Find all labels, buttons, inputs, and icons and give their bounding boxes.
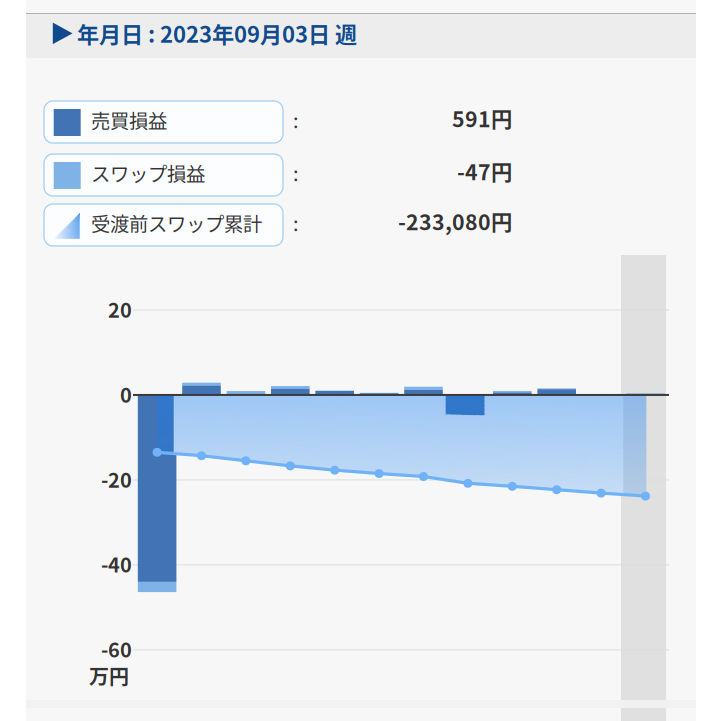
button[interactable]: スワップ損益 — [26, 154, 696, 196]
staticText: -233,080円 — [398, 205, 512, 236]
staticText: -20 — [101, 464, 132, 493]
staticText: -40 — [101, 549, 132, 578]
staticText: 0 — [120, 379, 132, 408]
staticText: スワップ損益 — [91, 159, 205, 187]
staticText: 売買損益 — [91, 106, 167, 134]
button[interactable]: 受渡前スワップ累計 — [26, 204, 696, 246]
staticText: 万円 — [89, 661, 129, 690]
staticText: : — [293, 158, 299, 187]
staticText: : — [293, 105, 299, 134]
staticText: 591円 — [452, 102, 512, 133]
staticText: 20 — [108, 294, 132, 323]
button[interactable]: 売買損益 — [26, 101, 696, 143]
staticText: -47円 — [457, 155, 512, 186]
staticText: : — [293, 208, 299, 237]
button[interactable]: 年月日 : 2023年09月03日 週 — [26, 14, 696, 58]
staticText: 年月日 : 2023年09月03日 週 — [77, 17, 357, 49]
staticText: -60 — [101, 634, 132, 663]
staticText: 受渡前スワップ累計 — [91, 209, 262, 237]
